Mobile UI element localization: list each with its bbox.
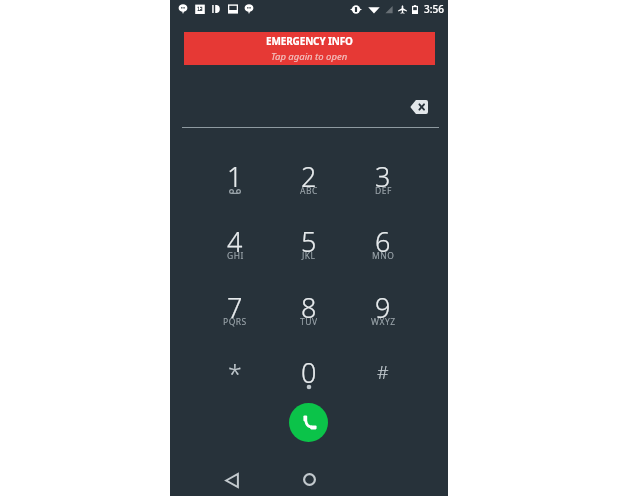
button[interactable]: 5 [272, 215, 346, 271]
staticText: ABC [300, 185, 318, 197]
button[interactable]: Back [218, 466, 246, 494]
button[interactable]: 2 [272, 150, 346, 206]
staticText: # [377, 360, 389, 385]
staticText: 2 [301, 158, 317, 195]
button[interactable]: 9 [346, 281, 420, 337]
button[interactable]: # [346, 346, 420, 402]
staticText: DEF [375, 185, 392, 197]
staticText: EMERGENCY INFO [266, 34, 353, 48]
staticText: WXYZ [371, 316, 396, 328]
staticText: 9 [375, 289, 391, 326]
button[interactable]: 6 [346, 215, 420, 271]
button[interactable]: 3 [346, 150, 420, 206]
staticText: 5 [301, 223, 317, 260]
staticText: JKL [302, 250, 316, 262]
staticText: 1 [227, 158, 243, 195]
button[interactable]: 1 [198, 150, 272, 206]
staticText: 8 [301, 289, 317, 326]
staticText: GHI [227, 250, 244, 262]
staticText: 3:56 [424, 2, 444, 16]
button[interactable]: Call [289, 403, 328, 442]
button[interactable]: 7 [198, 281, 272, 337]
button[interactable]: Home [295, 465, 323, 493]
staticText: 7 [227, 289, 243, 326]
button[interactable]: 4 [198, 215, 272, 271]
button[interactable]: 8 [272, 281, 346, 337]
button[interactable]: EMERGENCY INFO [184, 32, 435, 65]
button[interactable]: Backspace [404, 92, 434, 122]
staticText: Tap again to open [271, 50, 348, 63]
staticText: 0 [301, 354, 317, 391]
staticText: 6 [375, 223, 391, 260]
staticText: MNO [372, 250, 395, 262]
staticText: PQRS [223, 316, 247, 328]
staticText: TUV [300, 316, 318, 328]
button[interactable]: * [198, 346, 272, 402]
button[interactable]: 0 [272, 346, 346, 402]
staticText: 3 [375, 158, 391, 195]
staticText: 4 [227, 223, 243, 260]
staticText: * [228, 356, 242, 390]
